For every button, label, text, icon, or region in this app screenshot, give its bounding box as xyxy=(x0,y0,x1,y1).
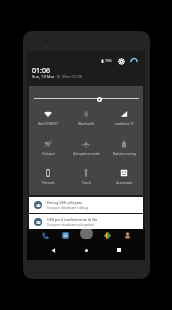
button[interactable]: Automatic xyxy=(105,163,143,192)
button[interactable]: Search xyxy=(80,227,93,240)
staticText: Mon 07:38 xyxy=(62,74,82,79)
button[interactable]: Aeroplane mode xyxy=(67,134,105,163)
button[interactable]: Phone xyxy=(41,231,50,240)
staticText: Automatic xyxy=(116,180,133,185)
button[interactable]: Home xyxy=(79,243,93,257)
button[interactable]: Portrait xyxy=(29,163,67,192)
staticText: Tocca per visualizzare più opzioni xyxy=(47,223,94,227)
staticText: Debug USB collegato xyxy=(47,200,83,205)
button[interactable]: Contacts xyxy=(123,231,132,240)
button[interactable]: Torch xyxy=(67,163,105,192)
staticText: Battery saving xyxy=(113,151,136,156)
staticText: Portrait xyxy=(42,180,55,185)
button[interactable]: Settings xyxy=(117,57,125,65)
button[interactable]: Brightness xyxy=(96,96,102,102)
button[interactable]: Battery saving xyxy=(105,134,143,163)
button[interactable]: vodafone IT xyxy=(105,104,143,133)
button[interactable]: Hotspot xyxy=(29,134,67,163)
staticText: USB per il trasferimento di file xyxy=(47,217,98,222)
staticText: Bluetooth xyxy=(78,121,94,126)
button[interactable]: Recent apps xyxy=(112,243,126,257)
button[interactable]: USB per il trasferimento di file xyxy=(29,214,143,229)
staticText: Hotspot xyxy=(42,151,55,156)
staticText: Tocca per disattivare il debug xyxy=(47,206,89,210)
button[interactable]: Bluetooth xyxy=(67,104,105,133)
staticText: Sun, 13 Mar xyxy=(32,74,55,79)
staticText: AlmV7SBV7I xyxy=(38,121,58,126)
button[interactable]: Debug USB collegato xyxy=(29,197,143,213)
button[interactable]: AlmV7SBV7I xyxy=(29,104,67,133)
button[interactable]: Messages xyxy=(61,231,70,240)
staticText: Torch xyxy=(82,180,91,185)
staticText: 76% xyxy=(105,58,112,63)
button[interactable]: User profile xyxy=(130,57,138,65)
staticText: Aeroplane mode xyxy=(73,151,100,156)
staticText: vodafone IT xyxy=(115,121,134,126)
button[interactable]: Photos xyxy=(103,231,112,240)
staticText: 01:06 xyxy=(32,66,50,76)
button[interactable]: Back xyxy=(46,243,60,257)
